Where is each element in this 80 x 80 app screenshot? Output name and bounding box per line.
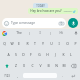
button[interactable]: K	[59, 50, 67, 59]
button[interactable]: L	[67, 50, 75, 59]
button[interactable]: ?123	[1, 72, 13, 79]
button[interactable]: Q	[1, 38, 8, 48]
staticText: I	[39, 31, 41, 35]
staticText: B	[47, 63, 50, 68]
staticText: TODAY	[36, 4, 45, 8]
staticText: T	[34, 41, 36, 46]
staticText: Hi	[59, 31, 63, 35]
staticText: .	[62, 74, 63, 78]
button[interactable]: Google	[0, 29, 9, 37]
button[interactable]: V	[36, 61, 44, 70]
staticText: C	[31, 63, 34, 68]
button[interactable]: H	[43, 50, 51, 59]
staticText: R	[26, 41, 29, 46]
staticText: F	[30, 52, 32, 57]
staticText: Y	[42, 41, 44, 46]
staticText: The	[16, 31, 22, 35]
staticText: M	[62, 63, 66, 68]
button[interactable]: Enter	[67, 72, 79, 79]
staticText: Z	[15, 63, 17, 68]
staticText: L	[70, 52, 72, 57]
staticText: X	[23, 63, 25, 68]
staticText: Q	[3, 41, 6, 46]
button[interactable]: G	[35, 50, 43, 59]
staticText: H	[46, 52, 49, 57]
staticText: O	[66, 41, 69, 46]
button[interactable]: TODAY	[36, 4, 45, 8]
button[interactable]: Y	[39, 38, 47, 48]
button[interactable]: I	[55, 38, 63, 48]
button[interactable]: Type a message	[2, 18, 66, 28]
button[interactable]: D	[19, 50, 27, 59]
staticText: P	[74, 41, 77, 46]
staticText: E	[18, 41, 20, 46]
staticText: A	[7, 52, 10, 57]
button[interactable]: C	[28, 61, 36, 70]
button[interactable]: A	[5, 50, 12, 59]
button[interactable]: Hey bro how are you?	[30, 9, 76, 13]
staticText: J	[55, 52, 56, 57]
staticText: ,	[17, 74, 18, 78]
button[interactable]: I	[30, 29, 50, 37]
button[interactable]: T	[31, 38, 39, 48]
staticText: Type a message	[11, 21, 35, 25]
staticText: K	[62, 52, 65, 57]
button[interactable]: S	[12, 50, 19, 59]
staticText: I	[58, 41, 60, 46]
staticText: U	[50, 41, 53, 46]
staticText: S	[15, 52, 17, 57]
button[interactable]: W	[8, 38, 15, 48]
staticText: 7:26 PM	[63, 10, 72, 13]
staticText: Hey bro how are you?	[30, 9, 62, 13]
button[interactable]: O	[63, 38, 71, 48]
staticText: W	[10, 41, 14, 46]
button[interactable]: M	[60, 61, 68, 70]
button[interactable]: F	[27, 50, 35, 59]
button[interactable]: Hi	[51, 29, 71, 37]
button[interactable]	[1, 61, 12, 70]
staticText: N	[55, 63, 58, 68]
button[interactable]: R	[23, 38, 31, 48]
button[interactable]: ,	[13, 72, 22, 79]
button[interactable]: Voice message	[68, 18, 78, 28]
button[interactable]: U	[47, 38, 55, 48]
button[interactable]: X	[20, 61, 28, 70]
button[interactable]: Voice input	[71, 29, 80, 37]
button[interactable]: J	[51, 50, 59, 59]
button[interactable]: E	[15, 38, 23, 48]
staticText: G	[38, 52, 41, 57]
button[interactable]: Z	[12, 61, 20, 70]
button[interactable]: N	[52, 61, 60, 70]
staticText: ?123	[4, 74, 10, 78]
button[interactable]: Backspace	[68, 61, 79, 70]
button[interactable]: B	[44, 61, 52, 70]
button[interactable]: Camera	[59, 21, 64, 26]
staticText: D	[22, 52, 25, 57]
staticText: V	[39, 63, 42, 68]
button[interactable]: P	[71, 38, 79, 48]
button[interactable]: The	[9, 29, 29, 37]
